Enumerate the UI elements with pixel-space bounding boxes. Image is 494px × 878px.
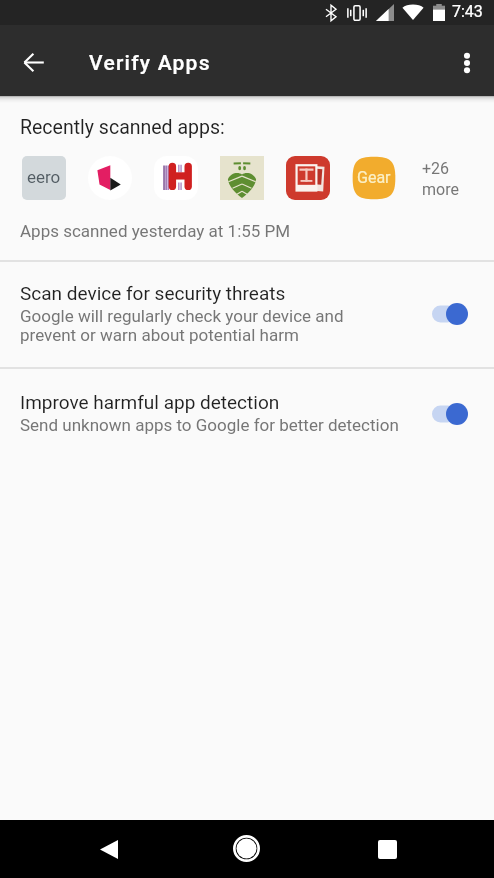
button[interactable]: Recent apps [357,820,417,878]
staticText: Verify Apps [89,51,211,75]
button[interactable]: Navigate up [10,38,58,86]
staticText: Recently scanned apps: [20,114,225,139]
staticText: eero [27,169,61,187]
button[interactable]: Scan device for security threats [0,262,494,367]
staticText: Google will regularly check your device … [20,307,344,345]
button[interactable]: Improve harmful app detection [0,369,494,451]
staticText: Send unknown apps to Google for better d… [20,416,399,435]
staticText: 7:43 [452,4,483,21]
button[interactable]: Home [216,819,276,877]
button[interactable]: Toggle [432,301,468,327]
staticText: Improve harmful app detection [20,392,280,414]
button[interactable]: Toggle [432,401,468,427]
staticText: Scan device for security threats [20,283,286,305]
button[interactable]: More options [443,39,491,87]
button[interactable]: Back [79,820,139,878]
staticText: Gear [357,170,391,187]
staticText: +26 more [422,157,459,199]
staticText: Apps scanned yesterday at 1:55 PM [20,221,291,241]
